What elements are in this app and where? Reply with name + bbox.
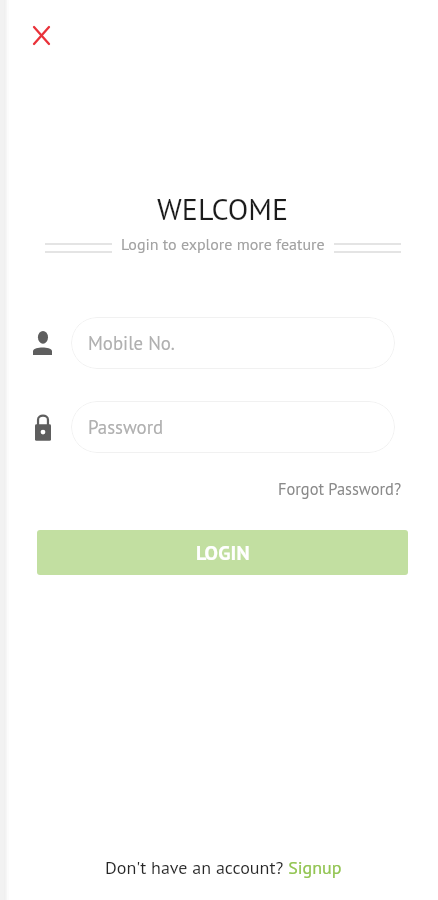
button[interactable]: Password [71,401,395,453]
button[interactable]: Forgot Password? [278,478,402,499]
button[interactable]: Close [24,18,58,52]
staticText: Login to explore more feature [121,234,325,255]
button[interactable]: LOGIN [37,530,408,575]
staticText: WELCOME [157,189,289,228]
staticText: Password [88,415,164,439]
staticText: Mobile No. [88,331,175,355]
staticText: Forgot Password? [278,478,402,499]
button[interactable]: Mobile No. [71,317,395,369]
staticText: LOGIN [196,540,250,566]
staticText: Don't have an account? Signup [105,856,342,879]
button[interactable]: Don't have an account? Signup [105,856,342,879]
